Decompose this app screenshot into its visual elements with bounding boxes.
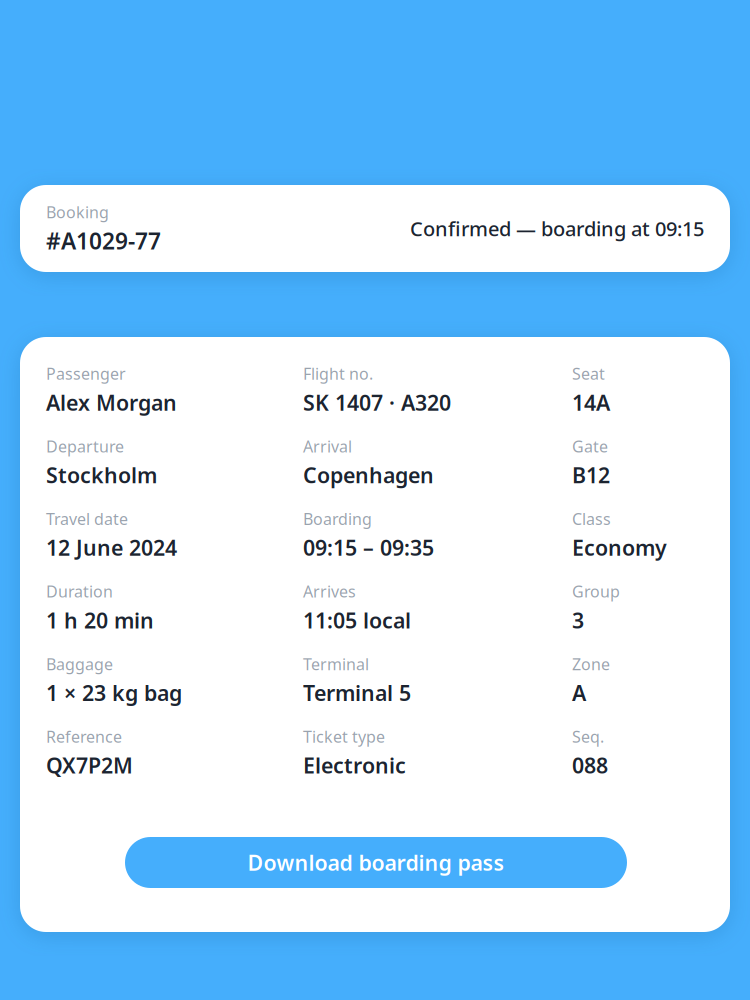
staticText: Download boarding pass [247, 848, 504, 877]
staticText: Baggage [46, 653, 113, 674]
staticText: Copenhagen [303, 461, 434, 489]
button[interactable]: Booking [20, 185, 730, 272]
staticText: QX7P2M [46, 751, 133, 779]
staticText: 11:05 local [303, 606, 411, 634]
staticText: Ticket type [303, 726, 385, 747]
staticText: Class [572, 508, 611, 529]
staticText: Zone [572, 653, 610, 674]
staticText: Boarding [303, 508, 372, 529]
staticText: Electronic [303, 751, 406, 779]
staticText: Group [572, 581, 620, 602]
staticText: 1 × 23 kg bag [46, 679, 182, 707]
staticText: Gate [572, 436, 608, 457]
staticText: 088 [572, 751, 608, 779]
staticText: 3 [572, 606, 584, 634]
staticText: 12 June 2024 [46, 533, 177, 562]
staticText: Duration [46, 581, 113, 602]
staticText: Departure [46, 436, 124, 457]
staticText: Arrives [303, 581, 356, 602]
staticText: Passenger [46, 363, 126, 384]
staticText: Stockholm [46, 461, 157, 489]
staticText: Terminal [303, 653, 369, 674]
staticText: 14A [572, 388, 610, 416]
staticText: 1 h 20 min [46, 606, 154, 634]
staticText: Seq. [572, 726, 604, 747]
staticText: Arrival [303, 436, 352, 457]
staticText: Reference [46, 726, 122, 747]
staticText: Economy [572, 533, 667, 562]
staticText: B12 [572, 461, 610, 489]
staticText: Alex Morgan [46, 388, 177, 416]
button[interactable]: Download boarding pass [125, 837, 627, 888]
staticText: SK 1407 · A320 [303, 388, 451, 416]
staticText: Confirmed — boarding at 09:15 [410, 215, 704, 242]
staticText: Seat [572, 363, 605, 384]
staticText: #A1029-77 [46, 226, 161, 256]
staticText: Booking [46, 201, 109, 222]
staticText: 09:15 – 09:35 [303, 533, 434, 562]
staticText: Flight no. [303, 363, 373, 384]
staticText: Travel date [46, 508, 128, 529]
staticText: Terminal 5 [303, 679, 411, 707]
staticText: A [572, 679, 586, 707]
